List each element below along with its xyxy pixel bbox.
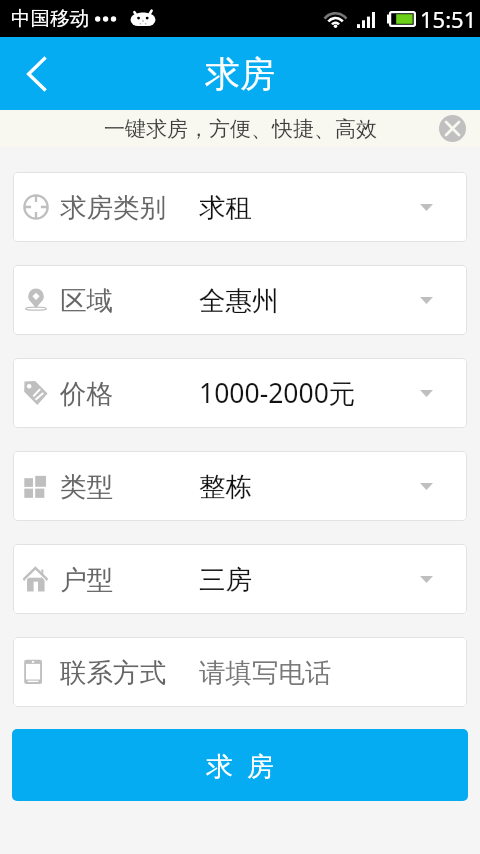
- staticText: 求 房: [206, 747, 275, 784]
- staticText: 15:51: [420, 4, 477, 34]
- staticText: 求房: [205, 52, 275, 96]
- staticText: 户型: [60, 563, 113, 596]
- staticText: 一键求房，方便、快捷、高效: [104, 116, 377, 142]
- button[interactable]: Close: [439, 115, 466, 142]
- staticText: 求房类别: [60, 191, 166, 224]
- staticText: 请填写电话: [199, 656, 332, 689]
- staticText: 中国移动: [11, 6, 89, 31]
- button[interactable]: 区域: [13, 265, 467, 335]
- staticText: 类型: [60, 470, 113, 503]
- button[interactable]: Back: [0, 38, 62, 110]
- button[interactable]: 户型: [13, 544, 467, 614]
- staticText: 1000-2000元: [199, 375, 356, 411]
- staticText: 联系方式: [60, 656, 166, 689]
- button[interactable]: 求 房: [12, 729, 468, 801]
- button[interactable]: 联系方式: [13, 637, 467, 707]
- staticText: 三房: [199, 563, 252, 596]
- staticText: 整栋: [199, 470, 252, 503]
- button[interactable]: 价格: [13, 358, 467, 428]
- button[interactable]: 类型: [13, 451, 467, 521]
- staticText: 求租: [199, 191, 252, 224]
- staticText: 价格: [60, 377, 113, 410]
- staticText: 区域: [60, 284, 113, 317]
- staticText: 全惠州: [199, 284, 279, 317]
- button[interactable]: 求房类别: [13, 172, 467, 242]
